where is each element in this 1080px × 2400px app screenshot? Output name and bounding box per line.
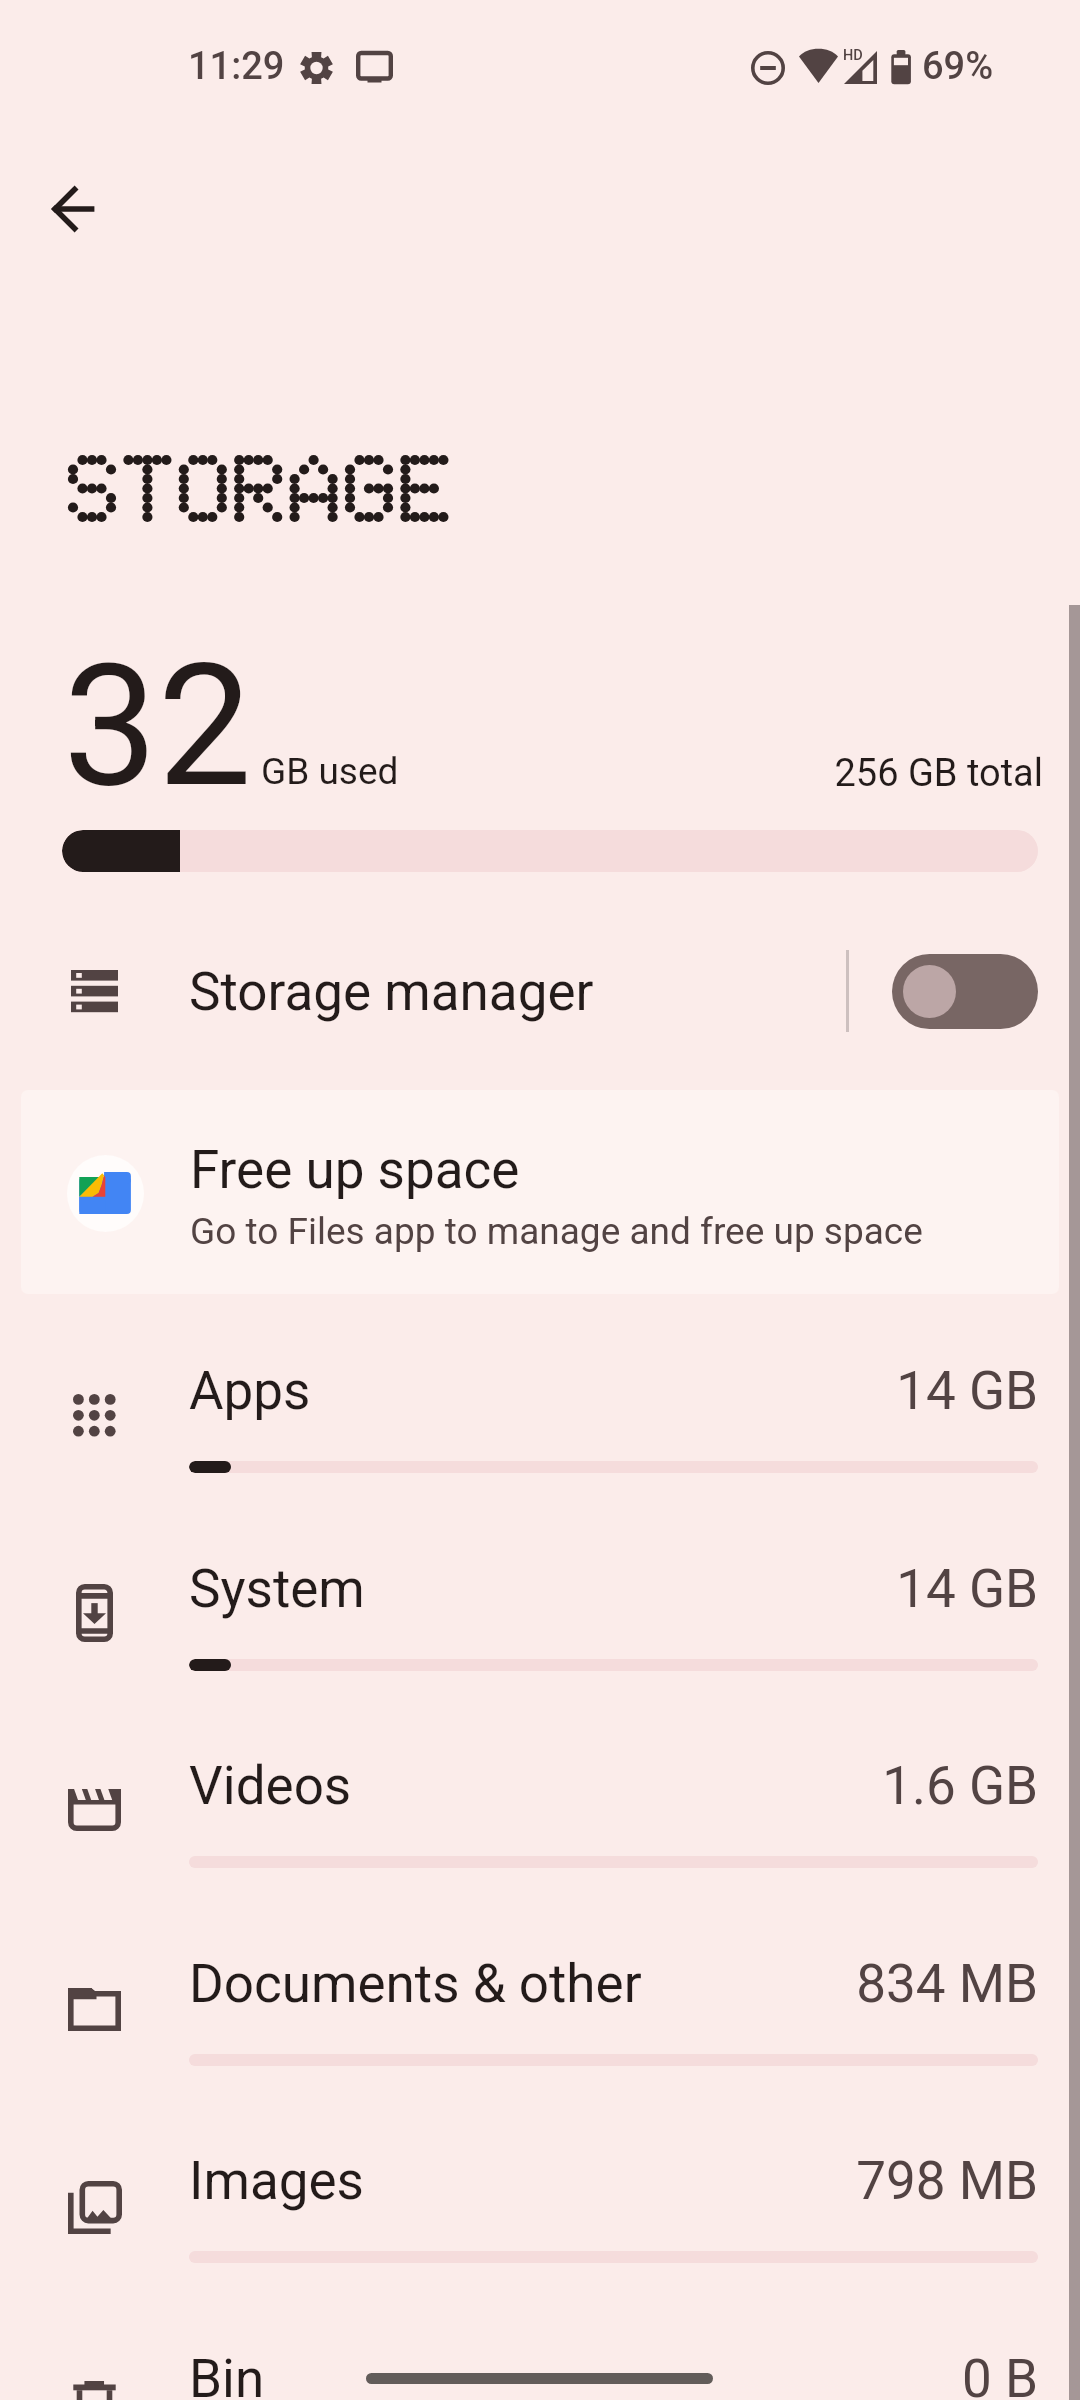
staticText: 11:29	[188, 44, 285, 89]
button[interactable]: Documents & other	[0, 1934, 1080, 2124]
staticText: Videos	[189, 1755, 352, 1817]
staticText: 14 GB	[600, 1360, 1038, 1422]
staticText: 256 GB total	[643, 751, 1043, 796]
staticText: Go to Files app to manage and free up sp…	[190, 1210, 923, 1253]
staticText: HD	[843, 47, 863, 64]
staticText: 1.6 GB	[600, 1755, 1038, 1817]
staticText: Free up space	[190, 1139, 520, 1201]
staticText: 0 B	[600, 2348, 1038, 2400]
button[interactable]: System	[0, 1539, 1080, 1729]
staticText: Bin	[189, 2348, 265, 2400]
staticText: Documents & other	[189, 1953, 642, 2015]
staticText: 69%	[922, 44, 994, 89]
staticText: Storage manager	[189, 961, 594, 1023]
staticText: 32	[63, 628, 252, 825]
staticText: 798 MB	[600, 2150, 1038, 2212]
button[interactable]: Storage manager	[0, 922, 1080, 1068]
staticText: 14 GB	[600, 1558, 1038, 1620]
button[interactable]: Back	[26, 161, 122, 257]
button[interactable]: Apps	[0, 1341, 1080, 1531]
staticText: Images	[189, 2150, 364, 2212]
button[interactable]: Bin	[0, 2329, 1080, 2400]
button[interactable]: Free up space	[21, 1090, 1059, 1294]
button[interactable]: Storage manager toggle	[892, 954, 1038, 1029]
button[interactable]: Videos	[0, 1736, 1080, 1926]
staticText: GB used	[261, 750, 399, 793]
staticText: Apps	[189, 1360, 311, 1422]
staticText: 834 MB	[600, 1953, 1038, 2015]
staticText: System	[189, 1558, 365, 1620]
button[interactable]: Images	[0, 2131, 1080, 2321]
